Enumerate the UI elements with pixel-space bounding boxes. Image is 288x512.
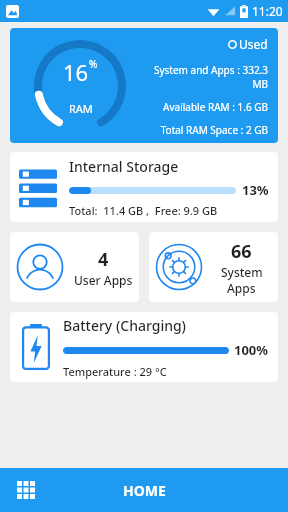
staticText: Battery (Charging)	[63, 316, 186, 335]
button[interactable]: 4	[10, 232, 139, 302]
button[interactable]: Battery (Charging)	[10, 312, 278, 382]
staticText: System and Apps : 332.3 MB	[150, 63, 268, 91]
staticText: Total RAM Space : 2 GB	[160, 123, 268, 137]
staticText: %	[89, 57, 98, 71]
staticText: RAM	[69, 101, 93, 116]
staticText: Apps	[227, 280, 256, 296]
staticText: 16	[63, 57, 89, 87]
button[interactable]: 66	[149, 232, 278, 302]
button[interactable]: Apps	[0, 468, 52, 512]
staticText: 13%	[242, 181, 269, 199]
staticText: 100%	[234, 341, 269, 359]
staticText: 4	[98, 247, 109, 272]
staticText: User Apps	[74, 272, 133, 288]
staticText: 11:20	[252, 3, 283, 19]
staticText: 66	[231, 239, 252, 264]
button[interactable]: 16	[10, 28, 278, 143]
staticText: Available RAM : 1.6 GB	[163, 100, 268, 114]
staticText: System	[221, 264, 263, 280]
staticText: Internal Storage	[69, 157, 179, 176]
button[interactable]: Internal Storage	[10, 152, 278, 222]
staticText: Total: 11.4 GB , Free: 9.9 GB	[69, 203, 218, 218]
staticText: HOME	[123, 481, 166, 500]
staticText: Temperature : 29 °C	[63, 364, 167, 379]
button[interactable]: HOME	[99, 468, 190, 512]
staticText: Used	[239, 36, 268, 52]
